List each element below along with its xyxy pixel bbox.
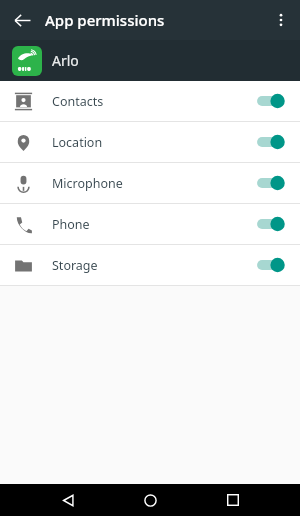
button[interactable]: Toggle Microphone permission [255,171,289,195]
button[interactable]: Phone [0,204,300,244]
button[interactable]: Contacts [0,81,300,121]
staticText: Storage [52,257,98,274]
staticText: Contacts [52,93,104,110]
staticText: Arlo [52,51,79,70]
button[interactable]: Toggle Contacts permission [255,89,289,113]
button[interactable]: Microphone [0,163,300,203]
button[interactable]: More options [266,5,296,35]
staticText: Location [52,134,103,151]
button[interactable]: Location [0,122,300,162]
button[interactable]: Back [8,6,36,34]
button[interactable]: Toggle Phone permission [255,212,289,236]
staticText: Microphone [52,175,123,192]
button[interactable]: Storage [0,245,300,285]
staticText: App permissions [45,10,165,30]
button[interactable]: Toggle Location permission [255,130,289,154]
staticText: Phone [52,216,90,233]
button[interactable]: Toggle Storage permission [255,253,289,277]
button[interactable]: Back [53,485,83,515]
button[interactable]: Home [135,485,165,515]
button[interactable]: Recent apps [218,485,248,515]
